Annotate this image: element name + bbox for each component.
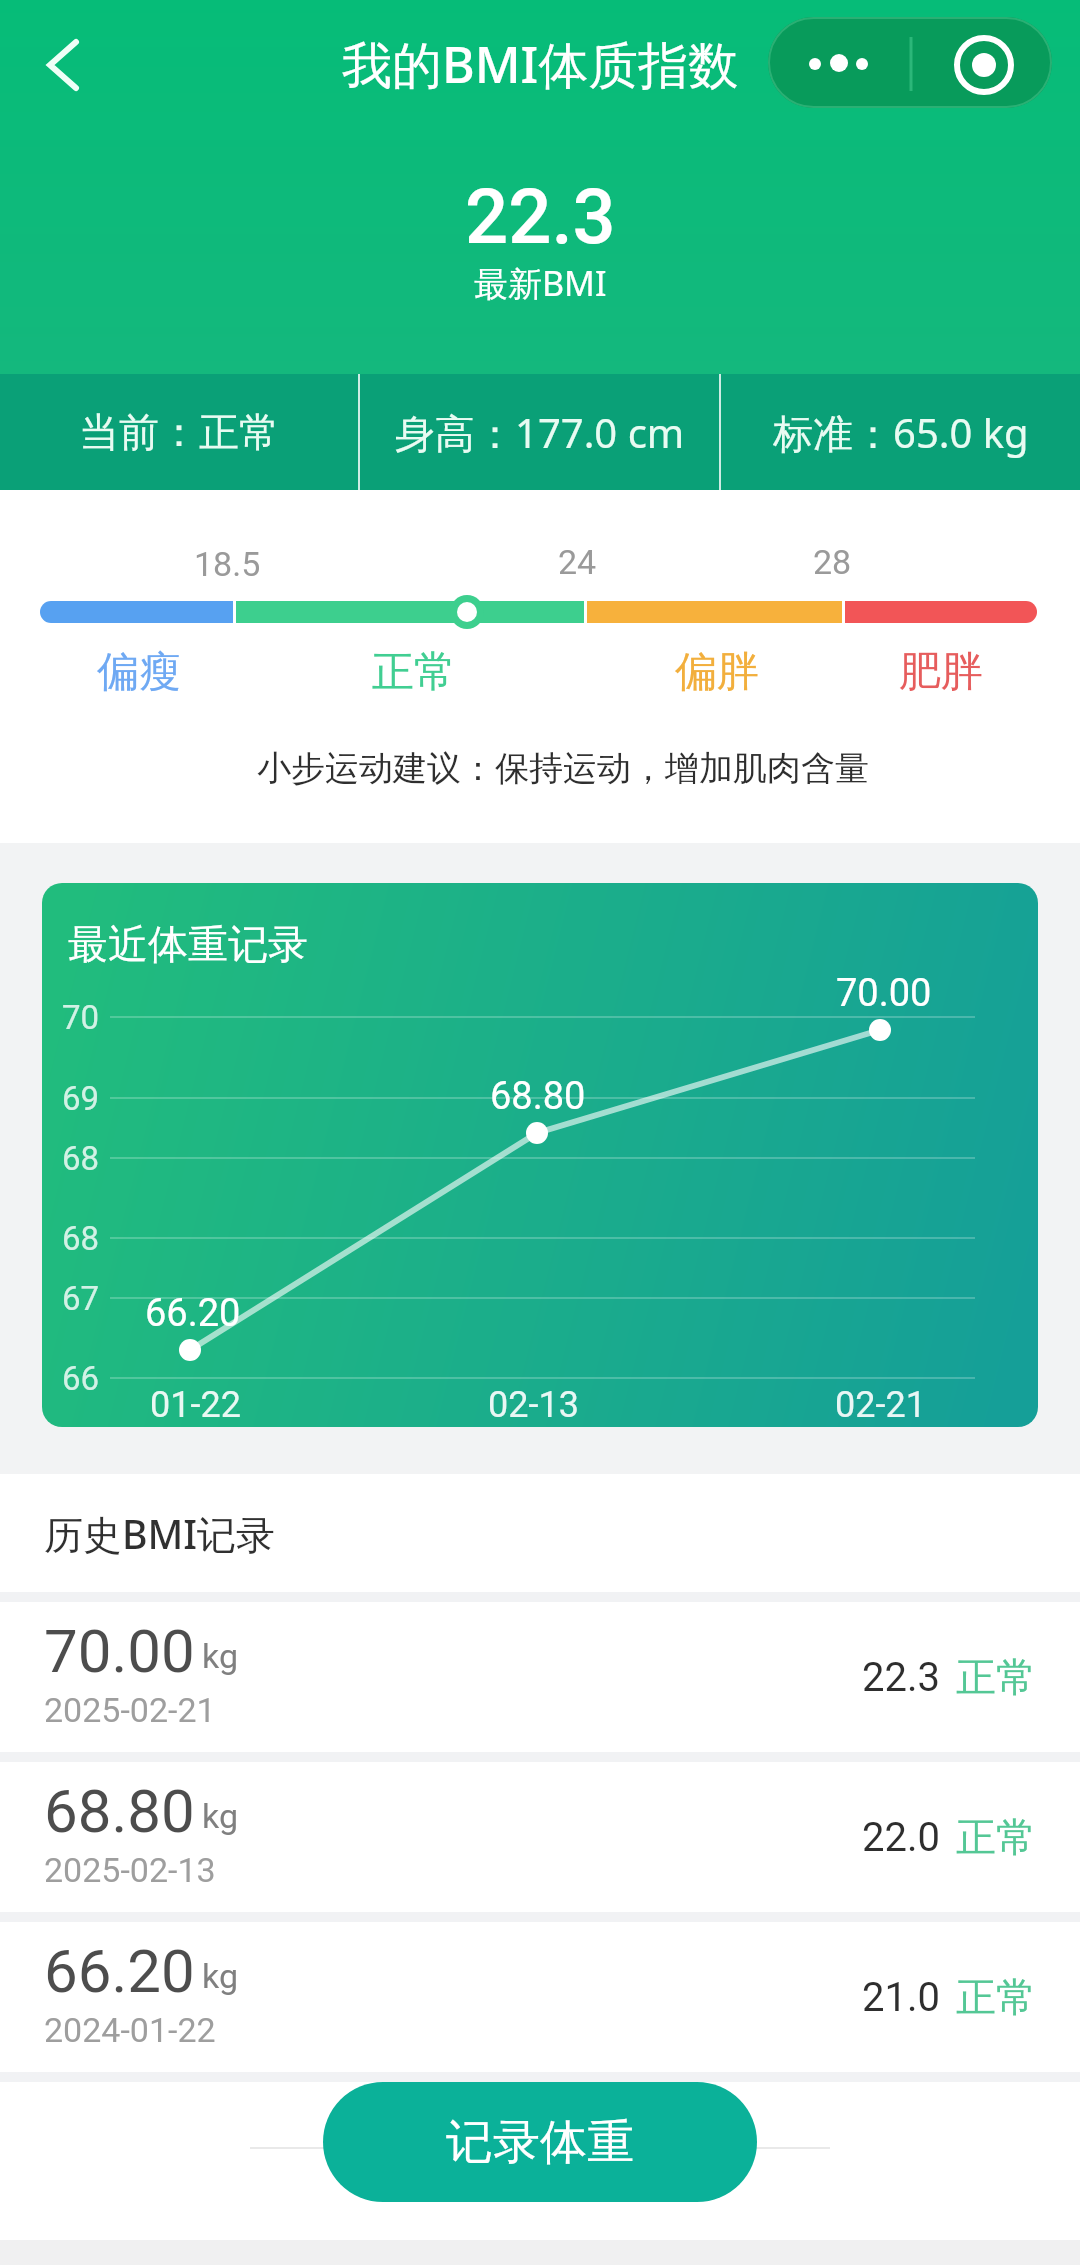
staticText: 18.5 [194,544,261,584]
staticText: 当前：正常 [79,407,279,457]
button[interactable]: 70.00 [0,1602,1080,1752]
button[interactable]: 标准：65.0 kg [721,374,1080,490]
staticText: 22.0 [862,1814,940,1861]
button[interactable]: 记录体重 [323,2082,757,2202]
staticText: 21.0 [862,1974,940,2021]
staticText: 67 [62,1279,100,1318]
staticText: 偏胖 [675,646,759,699]
staticText: 02-21 [835,1384,926,1426]
button[interactable]: 身高：177.0 cm [360,374,719,490]
staticText: 68 [62,1139,100,1178]
staticText: 记录体重 [446,2113,634,2172]
staticText: 68.80 [490,1074,586,1119]
staticText: kg [202,1796,238,1836]
staticText: 01-22 [150,1384,241,1426]
staticText: 66 [62,1359,100,1398]
staticText: 69 [62,1079,100,1118]
button[interactable]: 68.80 [0,1762,1080,1912]
staticText: 2024-01-22 [44,2010,216,2050]
button[interactable]: 当前：正常 [0,374,358,490]
staticText: 70.00 [836,971,932,1016]
staticText: 66.20 [145,1291,241,1336]
staticText: 小步运动建议：保持运动，增加肌肉含量 [257,747,869,790]
staticText: 肥胖 [899,646,983,699]
staticText: 66.20 [44,1936,195,2006]
staticText: 最新BMI [474,260,607,306]
staticText: 偏瘦 [97,646,181,699]
staticText: 70.00 [44,1616,195,1686]
staticText: 28 [813,542,852,582]
staticText: 正常 [956,1652,1036,1702]
staticText: 正常 [956,1812,1036,1862]
staticText: 22.3 [465,172,616,261]
staticText: 22.3 [862,1654,940,1701]
staticText: 我的BMI体质指数 [342,30,739,98]
staticText: 02-13 [488,1384,579,1426]
staticText: 2025-02-21 [44,1690,216,1730]
staticText: 正常 [956,1972,1036,2022]
staticText: 68.80 [44,1776,195,1846]
staticText: kg [202,1636,238,1676]
staticText: 标准：65.0 kg [773,405,1029,460]
button[interactable] [768,17,1052,108]
staticText: 2025-02-13 [44,1850,216,1890]
staticText: 历史BMI记录 [44,1507,276,1560]
button[interactable]: 66.20 [0,1922,1080,2072]
staticText: 70 [62,998,100,1037]
button[interactable] [30,28,96,102]
staticText: 最近体重记录 [68,919,308,969]
staticText: 正常 [372,646,456,699]
staticText: 68 [62,1219,100,1258]
staticText: kg [202,1956,238,1996]
staticText: 24 [558,542,597,582]
staticText: 身高：177.0 cm [395,405,685,460]
